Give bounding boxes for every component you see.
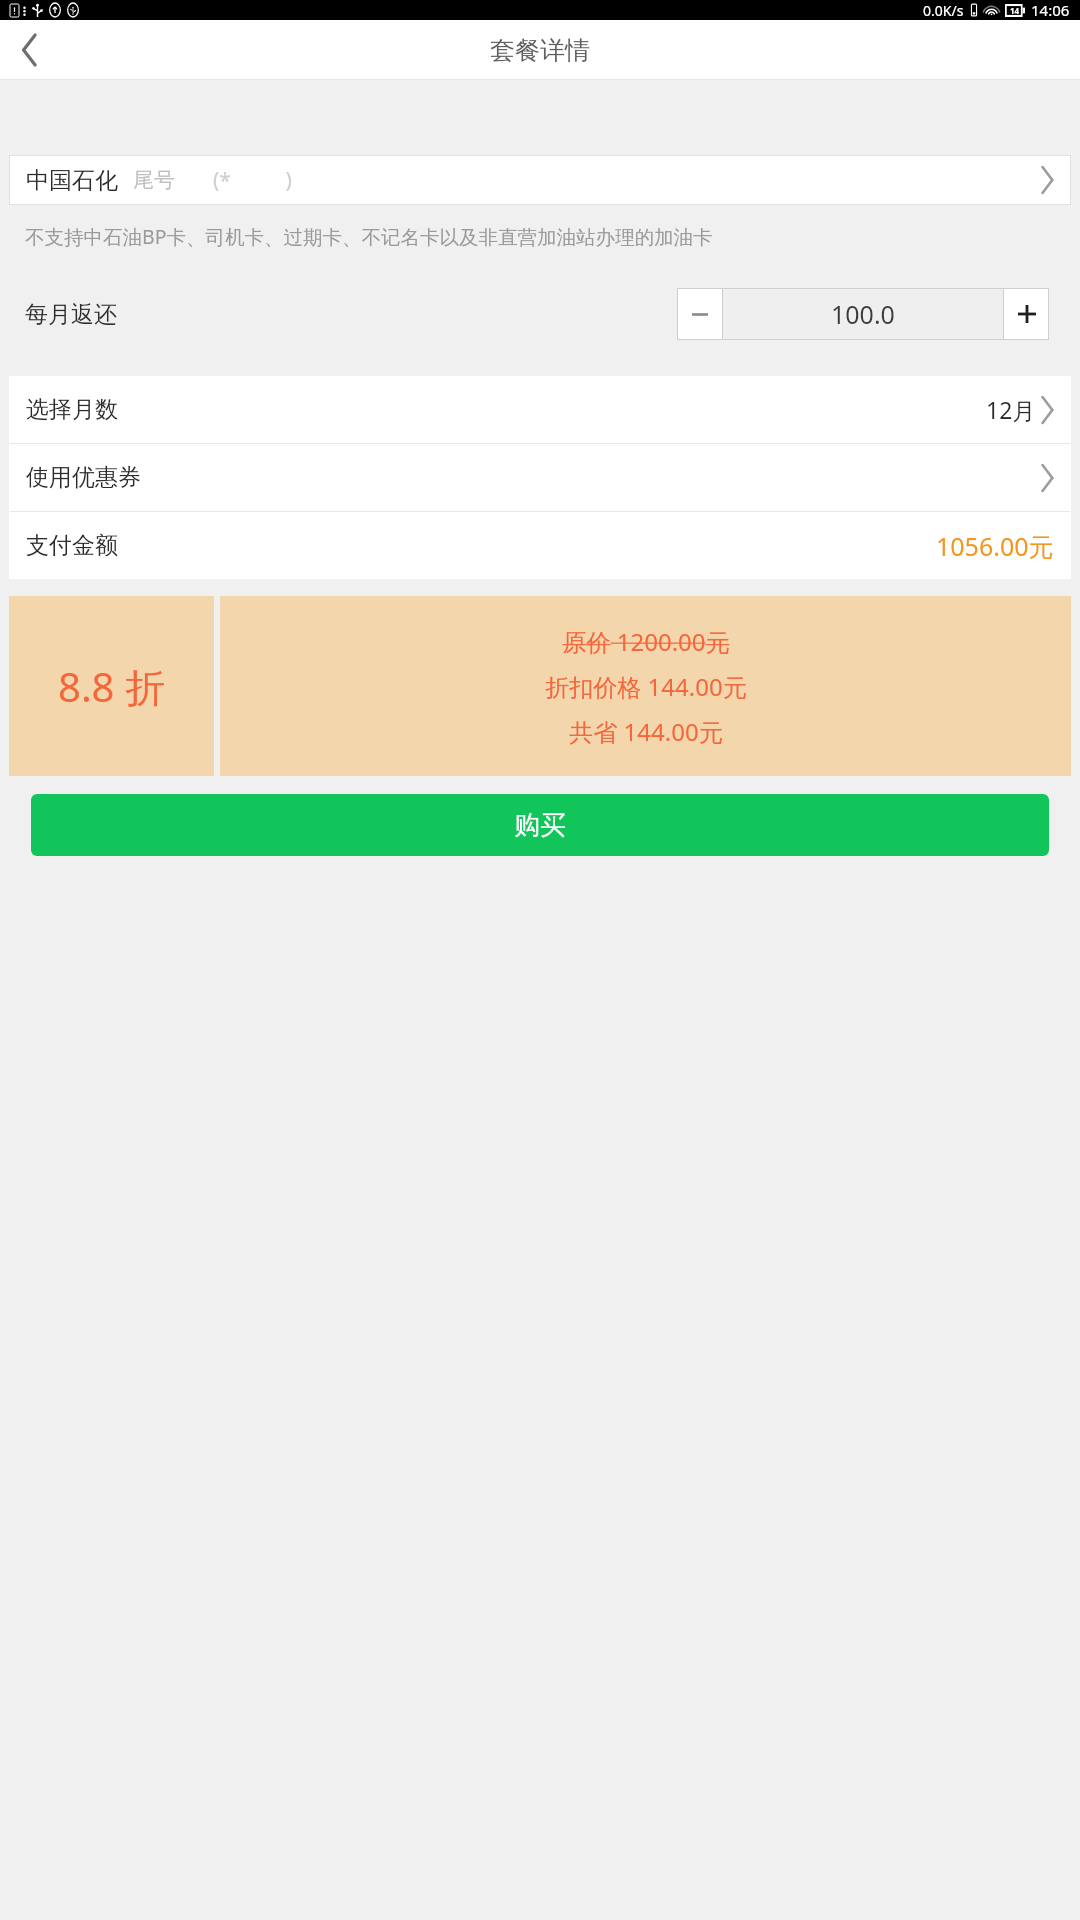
button[interactable]: Decrease (677, 288, 722, 340)
button[interactable]: 100.0 (723, 288, 1003, 340)
button[interactable]: Back (0, 20, 60, 80)
staticText: 12月 (986, 394, 1036, 425)
staticText: 100.0 (831, 297, 895, 331)
staticText: 购买 (514, 809, 566, 842)
staticText: 原价 1200.00元 (562, 625, 730, 658)
button[interactable]: 购买 (31, 794, 1049, 856)
staticText: 8.8 折 (58, 659, 165, 714)
button[interactable]: Increase (1004, 288, 1049, 340)
button[interactable]: 选择月数 (9, 376, 1071, 443)
staticText: 尾号 (133, 167, 175, 193)
staticText: (* ) (213, 166, 292, 195)
button[interactable]: 支付金额 (9, 512, 1071, 579)
staticText: 套餐详情 (490, 35, 590, 66)
staticText: 14 (1010, 5, 1020, 16)
button[interactable]: 使用优惠券 (9, 444, 1071, 511)
staticText: 支付金额 (26, 531, 118, 560)
staticText: 1056.00元 (936, 529, 1054, 563)
staticText: 不支持中石油BP卡、司机卡、过期卡、不记名卡以及非直营加油站办理的加油卡 (25, 223, 1055, 250)
button[interactable]: 8.8 折 (9, 596, 214, 776)
staticText: 14:06 (1031, 0, 1070, 20)
button[interactable]: 中国石化 (9, 155, 1071, 205)
staticText: 折扣价格 144.00元 (545, 670, 747, 703)
staticText: 每月返还 (25, 300, 117, 329)
staticText: 中国石化 (26, 166, 118, 195)
button[interactable]: 原价 1200.00元 (220, 596, 1071, 776)
staticText: 使用优惠券 (26, 463, 141, 492)
staticText: 0.0K/s (923, 1, 964, 20)
staticText: 共省 144.00元 (569, 715, 723, 748)
staticText: 选择月数 (26, 395, 118, 424)
